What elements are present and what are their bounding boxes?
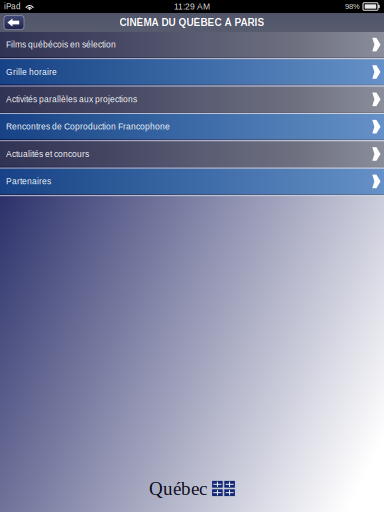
staticText: Films québécois en sélection (6, 40, 116, 49)
button[interactable]: Actualités et concours (0, 141, 384, 169)
staticText: Activités parallèles aux projections (6, 95, 137, 104)
staticText: CINÉMA DU QUÉBEC À PARIS (119, 17, 264, 28)
button[interactable]: Rencontres de Coproduction Francophone (0, 114, 384, 141)
staticText: 98% (345, 2, 360, 11)
staticText: Grille horaire (6, 67, 57, 77)
button[interactable]: Activités parallèles aux projections (0, 87, 384, 114)
staticText: Partenaires (6, 177, 51, 186)
button[interactable]: Back (4, 15, 24, 29)
button[interactable]: Partenaires (0, 169, 384, 196)
staticText: iPad (4, 2, 21, 11)
staticText: Actualités et concours (6, 149, 89, 159)
staticText: 11:29 AM (174, 2, 210, 11)
staticText: Québec (149, 478, 207, 499)
staticText: Rencontres de Coproduction Francophone (6, 122, 170, 131)
button[interactable]: Films québécois en sélection (0, 32, 384, 59)
button[interactable]: Grille horaire (0, 59, 384, 87)
